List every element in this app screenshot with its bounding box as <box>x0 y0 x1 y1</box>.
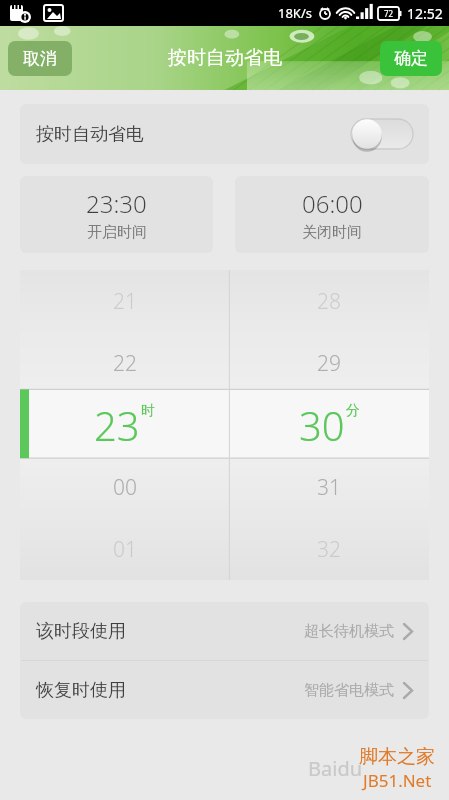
button[interactable]: 确定 <box>380 41 442 76</box>
staticText: 恢复时使用 <box>36 679 126 702</box>
staticText: 取消 <box>23 48 57 69</box>
staticText: 按时自动省电 <box>36 123 144 146</box>
staticText: 32 <box>317 535 341 564</box>
staticText: 00 <box>113 473 137 502</box>
staticText: 23 <box>94 398 140 452</box>
staticText: 智能省电模式 <box>304 681 394 700</box>
staticText: 18K/s <box>278 4 312 22</box>
staticText: 按时自动省电 <box>168 46 282 70</box>
staticText: 28 <box>317 287 341 316</box>
button[interactable]: 取消 <box>8 41 72 76</box>
staticText: 30 <box>299 398 345 452</box>
button[interactable]: 06:00 <box>235 176 429 253</box>
button[interactable]: 恢复时使用 <box>20 661 429 719</box>
staticText: 12:52 <box>407 4 443 23</box>
staticText: 21 <box>113 287 137 316</box>
staticText: Baidu <box>308 755 363 782</box>
staticText: 23:30 <box>86 187 147 220</box>
staticText: 关闭时间 <box>302 223 362 242</box>
button[interactable]: 21 <box>20 270 229 580</box>
other: Toggle scheduled power saving <box>351 119 413 149</box>
staticText: 31 <box>317 473 341 502</box>
button[interactable]: 该时段使用 <box>20 602 429 660</box>
staticText: 01 <box>113 535 137 564</box>
staticText: 时 <box>141 402 155 420</box>
staticText: JB51.Net <box>363 769 432 792</box>
staticText: 开启时间 <box>87 223 147 242</box>
button[interactable]: 按时自动省电 <box>20 104 429 164</box>
staticText: 72 <box>384 8 394 19</box>
staticText: 29 <box>317 349 341 378</box>
staticText: 22 <box>113 349 137 378</box>
staticText: 超长待机模式 <box>304 622 394 641</box>
staticText: 确定 <box>394 48 428 69</box>
button[interactable]: 23:30 <box>20 176 213 253</box>
button[interactable]: 28 <box>229 270 429 580</box>
staticText: 06:00 <box>302 187 363 220</box>
staticText: 分 <box>346 402 360 420</box>
staticText: 该时段使用 <box>36 620 126 643</box>
staticText: 脚本之家 <box>359 745 435 769</box>
